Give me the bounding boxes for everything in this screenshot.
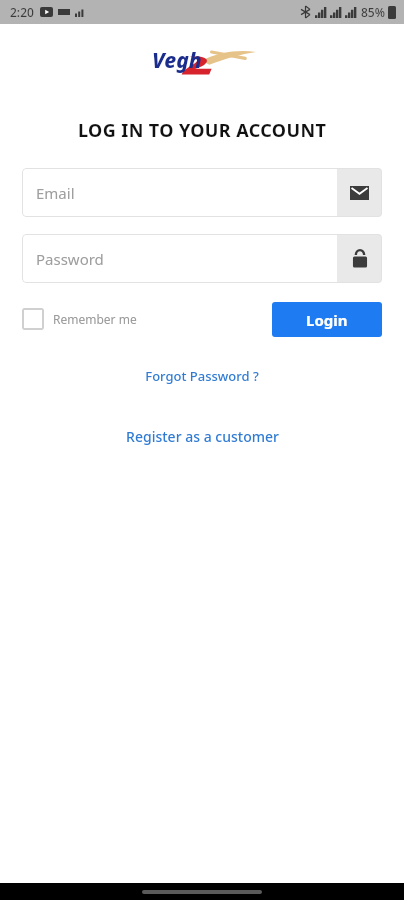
button[interactable]: Login: [272, 302, 382, 337]
staticText: Forgot Password ?: [145, 367, 259, 385]
staticText: 85%: [361, 4, 385, 20]
staticText: 2:20: [10, 4, 34, 20]
staticText: Password: [36, 249, 104, 269]
staticText: Remember me: [53, 311, 137, 327]
button[interactable]: Email: [22, 168, 382, 217]
button[interactable]: Register as a customer: [116, 423, 289, 450]
button[interactable]: Password: [337, 234, 382, 283]
staticText: Email: [36, 183, 75, 203]
staticText: Vegh: [152, 46, 202, 75]
button[interactable]: Forgot Password ?: [135, 363, 269, 389]
staticText: LOG IN TO YOUR ACCOUNT: [78, 118, 327, 143]
staticText: Register as a customer: [126, 427, 279, 446]
button[interactable]: Email: [337, 168, 382, 217]
button[interactable]: Remember me: [22, 308, 137, 330]
button[interactable]: Password: [22, 234, 382, 283]
staticText: Login: [306, 310, 348, 330]
